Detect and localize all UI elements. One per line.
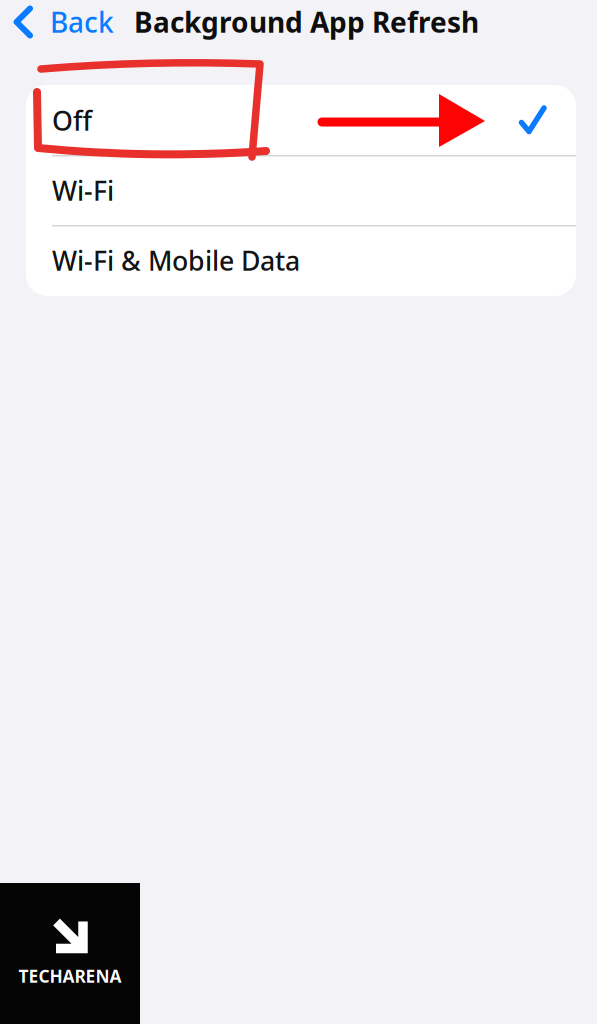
staticText: TECHARENA xyxy=(18,964,121,987)
staticText: Wi-Fi & Mobile Data xyxy=(52,243,300,278)
staticText: Wi-Fi xyxy=(52,173,114,208)
button[interactable]: Back xyxy=(0,0,134,44)
staticText: Back xyxy=(50,3,114,41)
button[interactable]: Wi-Fi xyxy=(26,155,576,225)
staticText: Background App Refresh xyxy=(134,3,479,41)
button[interactable]: Off xyxy=(26,85,576,155)
staticText: Off xyxy=(52,103,92,138)
button[interactable]: Wi-Fi & Mobile Data xyxy=(26,225,576,295)
